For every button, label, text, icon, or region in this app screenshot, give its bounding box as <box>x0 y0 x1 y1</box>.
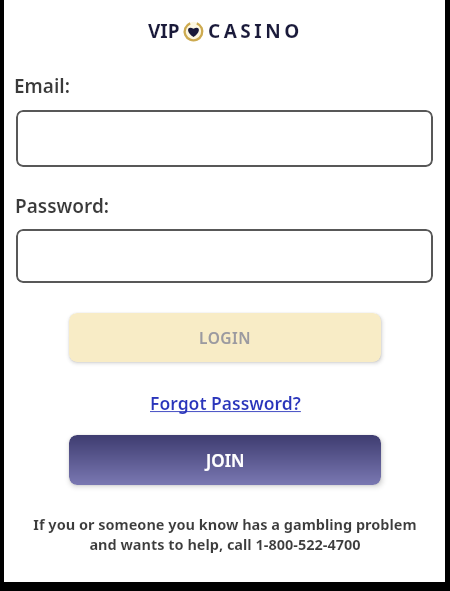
staticText: CASINO <box>208 18 303 44</box>
staticText: JOIN <box>206 449 245 472</box>
staticText: Forgot Password? <box>150 391 301 415</box>
button[interactable] <box>16 229 433 283</box>
staticText: VIP <box>148 18 180 44</box>
button[interactable]: Forgot Password? <box>150 391 301 415</box>
button[interactable]: JOIN <box>69 435 381 485</box>
button[interactable] <box>16 110 433 167</box>
button[interactable]: LOGIN <box>69 313 381 362</box>
staticText: Password: <box>15 193 110 219</box>
staticText: Email: <box>14 73 70 99</box>
staticText: If you or someone you know has a gamblin… <box>33 514 417 555</box>
staticText: LOGIN <box>199 327 252 348</box>
